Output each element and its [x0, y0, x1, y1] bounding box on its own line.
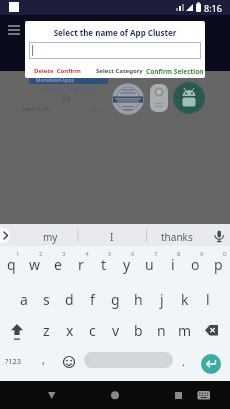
staticText: p	[214, 255, 223, 274]
button[interactable]	[103, 381, 127, 409]
staticText: 6	[131, 250, 135, 258]
staticText: u	[145, 255, 154, 274]
staticText: 8:16	[204, 2, 222, 14]
staticText: k	[181, 290, 189, 309]
button[interactable]: h	[127, 285, 150, 313]
staticText: x	[66, 321, 74, 340]
button[interactable]: b	[127, 316, 150, 344]
button[interactable]: f	[81, 285, 104, 313]
button[interactable]: w	[23, 250, 46, 278]
button[interactable]	[58, 351, 80, 373]
staticText: q	[7, 255, 16, 274]
button[interactable]: v	[104, 316, 127, 344]
staticText: 0	[223, 250, 227, 258]
staticText: Select the name of App Cluster	[25, 27, 205, 38]
staticText: 2	[39, 250, 43, 258]
staticText: 3	[62, 250, 66, 258]
staticText: w	[29, 255, 41, 274]
button[interactable]: m	[173, 316, 196, 344]
button[interactable]	[200, 318, 224, 342]
button[interactable]: z	[35, 316, 58, 344]
button[interactable]: c	[81, 316, 104, 344]
button[interactable]: x	[58, 316, 81, 344]
button[interactable]: k	[173, 285, 196, 313]
staticText: ,	[42, 352, 45, 367]
staticText: 8	[177, 250, 181, 258]
button[interactable]	[84, 352, 173, 368]
staticText: Select Category	[96, 67, 143, 75]
button[interactable]	[167, 381, 191, 409]
staticText: a	[20, 290, 28, 309]
staticText: 9	[200, 250, 204, 258]
staticText: my	[43, 230, 58, 244]
button[interactable]: e	[46, 250, 69, 278]
staticText: l	[206, 290, 210, 309]
staticText: t	[101, 255, 107, 274]
staticText: y	[123, 255, 131, 274]
staticText: z	[43, 321, 50, 340]
button[interactable]: u	[138, 250, 161, 278]
staticText: thanks	[161, 230, 193, 244]
staticText: Monetized Apps	[36, 77, 74, 84]
button[interactable]: a	[12, 285, 35, 313]
staticText: b	[134, 321, 143, 340]
button[interactable]: i	[161, 250, 184, 278]
staticText: s	[43, 290, 50, 309]
staticText: Add to FA	[22, 105, 49, 113]
button[interactable]: my	[16, 226, 84, 248]
staticText: c	[89, 321, 96, 340]
button[interactable]: p	[207, 250, 230, 278]
staticText: f	[90, 290, 95, 309]
button[interactable]: n	[150, 316, 173, 344]
staticText: .	[182, 354, 185, 369]
button[interactable]: .	[175, 347, 191, 375]
staticText: g	[111, 290, 120, 309]
button[interactable]: d	[58, 285, 81, 313]
staticText: 1	[16, 250, 20, 258]
button[interactable]: q	[0, 250, 23, 278]
staticText: i	[171, 255, 175, 274]
button[interactable]: j	[150, 285, 173, 313]
staticText: v	[112, 321, 120, 340]
button[interactable]	[0, 228, 10, 243]
button[interactable]	[40, 381, 64, 409]
button[interactable]: s	[35, 285, 58, 313]
staticText: 7	[154, 250, 158, 258]
button[interactable]	[29, 42, 201, 59]
staticText: Delete Confirm	[34, 67, 81, 75]
button[interactable]	[207, 224, 230, 246]
button[interactable]: thanks	[146, 226, 208, 248]
staticText: m	[178, 321, 192, 340]
staticText: 29	[62, 95, 71, 105]
button[interactable]	[5, 318, 29, 342]
staticText: j	[160, 290, 164, 309]
button[interactable]	[190, 381, 218, 409]
button[interactable]: t	[92, 250, 115, 278]
staticText: e	[54, 255, 62, 274]
button[interactable]: ?123	[0, 347, 26, 375]
button[interactable]: Select Category	[96, 67, 143, 75]
button[interactable]	[0, 15, 30, 45]
button[interactable]: o	[184, 250, 207, 278]
staticText: 5	[108, 250, 112, 258]
button[interactable]: Delete Confirm	[34, 67, 81, 75]
staticText: ?123	[5, 356, 22, 366]
button[interactable]	[201, 354, 221, 374]
staticText: Viewed @: May 4, 2018	[25, 86, 111, 93]
staticText: n	[157, 321, 166, 340]
staticText: h	[134, 290, 143, 309]
staticText: ...	[93, 103, 99, 113]
staticText: d	[65, 290, 74, 309]
staticText: Confirm Selection	[146, 67, 204, 76]
button[interactable]: g	[104, 285, 127, 313]
button[interactable]: ,	[34, 345, 52, 373]
staticText: o	[191, 255, 200, 274]
staticText: r	[78, 255, 84, 274]
staticText: I	[110, 230, 114, 244]
staticText: 4	[85, 250, 89, 258]
button[interactable]: Confirm Selection	[146, 67, 204, 76]
button[interactable]: r	[69, 250, 92, 278]
button[interactable]: y	[115, 250, 138, 278]
button[interactable]: l	[196, 285, 219, 313]
button[interactable]: I	[78, 226, 146, 248]
